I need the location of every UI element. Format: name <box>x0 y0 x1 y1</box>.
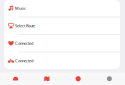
button[interactable]: Vehicle <box>0 72 31 85</box>
button[interactable]: Settings <box>94 72 125 85</box>
button[interactable]: Connected <box>4 52 120 69</box>
staticText: Music <box>15 6 26 11</box>
button[interactable]: Select Route <box>4 17 120 34</box>
staticText: Select Route <box>15 23 35 28</box>
button[interactable]: Connected <box>4 35 120 52</box>
staticText: Connected <box>15 41 33 46</box>
button[interactable]: Map <box>31 72 62 85</box>
button[interactable]: Activity <box>62 72 94 85</box>
staticText: Connected <box>15 58 33 63</box>
button[interactable]: Music <box>4 0 120 17</box>
